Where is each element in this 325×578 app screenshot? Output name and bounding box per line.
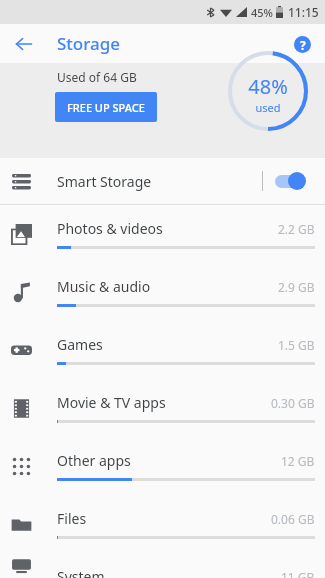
staticText: 0.06 GB bbox=[271, 511, 315, 527]
button[interactable]: Music & audio bbox=[0, 263, 325, 321]
button[interactable]: Other apps bbox=[0, 437, 325, 495]
staticText: 11:15 bbox=[288, 4, 319, 20]
staticText: 0.30 GB bbox=[271, 395, 315, 411]
staticText: Movie & TV apps bbox=[57, 393, 166, 412]
button[interactable]: Smart Storage toggle bbox=[271, 168, 315, 194]
button[interactable]: Help bbox=[287, 29, 317, 59]
button[interactable]: System bbox=[0, 553, 325, 578]
staticText: Files bbox=[57, 509, 87, 528]
button[interactable]: Back bbox=[8, 28, 40, 60]
staticText: 12 GB bbox=[281, 453, 315, 469]
staticText: Games bbox=[57, 335, 103, 354]
button[interactable]: Movie & TV apps bbox=[0, 379, 325, 437]
button[interactable]: Photos & videos bbox=[0, 205, 325, 263]
staticText: FREE UP SPACE bbox=[67, 100, 145, 115]
staticText: 2.2 GB bbox=[278, 221, 315, 237]
staticText: 48% bbox=[248, 73, 288, 100]
staticText: 1.5 GB bbox=[278, 337, 315, 353]
button[interactable]: Files bbox=[0, 495, 325, 553]
staticText: Used of 64 GB bbox=[57, 69, 137, 85]
staticText: Other apps bbox=[57, 451, 131, 470]
staticText: ? bbox=[300, 37, 306, 53]
button[interactable]: Games bbox=[0, 321, 325, 379]
staticText: 2.9 GB bbox=[278, 279, 315, 295]
staticText: 11 GB bbox=[281, 569, 315, 578]
button[interactable]: Smart Storage bbox=[0, 158, 325, 204]
staticText: Storage bbox=[57, 32, 121, 55]
staticText: Photos & videos bbox=[57, 219, 163, 238]
staticText: Smart Storage bbox=[57, 172, 152, 191]
staticText: Music & audio bbox=[57, 277, 151, 296]
staticText: 45% bbox=[251, 5, 273, 20]
staticText: used bbox=[255, 100, 281, 115]
staticText: System bbox=[57, 567, 105, 578]
button[interactable]: FREE UP SPACE bbox=[55, 92, 157, 122]
